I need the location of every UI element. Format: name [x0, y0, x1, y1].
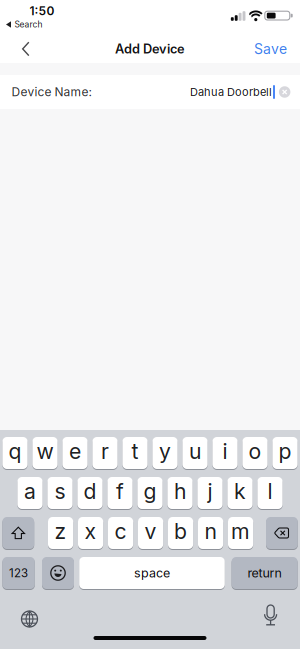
staticText: e: [69, 438, 81, 464]
staticText: a: [24, 478, 36, 504]
staticText: u: [189, 438, 201, 464]
staticText: i: [222, 438, 227, 464]
staticText: return: [248, 565, 282, 580]
staticText: y: [159, 438, 171, 464]
staticText: b: [174, 518, 187, 544]
staticText: Device Name:: [11, 85, 91, 99]
staticText: x: [85, 518, 97, 544]
staticText: p: [278, 438, 291, 464]
staticText: w: [36, 438, 53, 464]
staticText: d: [83, 478, 96, 504]
staticText: Search: [14, 19, 42, 30]
staticText: t: [131, 438, 138, 464]
staticText: f: [116, 478, 124, 504]
staticText: l: [267, 478, 272, 504]
staticText: z: [55, 518, 67, 544]
staticText: q: [8, 438, 21, 464]
staticText: Add Device: [115, 41, 185, 57]
staticText: g: [143, 478, 156, 504]
staticText: Dahua Doorbell: [190, 85, 272, 99]
staticText: Save: [254, 40, 287, 57]
staticText: m: [231, 518, 250, 544]
staticText: o: [248, 438, 261, 464]
staticText: s: [54, 478, 65, 504]
staticText: 1:50: [29, 4, 54, 18]
staticText: r: [101, 438, 109, 464]
staticText: j: [207, 478, 212, 504]
staticText: v: [145, 518, 157, 544]
staticText: h: [174, 478, 186, 504]
staticText: space: [134, 565, 170, 580]
staticText: 123: [9, 566, 28, 580]
staticText: c: [115, 518, 127, 544]
staticText: n: [205, 518, 217, 544]
staticText: k: [234, 478, 246, 504]
